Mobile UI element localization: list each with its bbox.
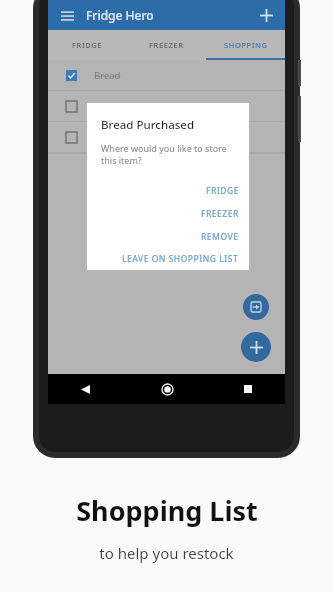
- button[interactable]: Recents: [237, 378, 259, 400]
- button[interactable]: Move to fridge: [243, 294, 269, 320]
- staticText: LEAVE ON SHOPPING LIST: [122, 253, 239, 265]
- staticText: FRIDGE: [206, 185, 239, 197]
- button[interactable]: REMOVE: [101, 225, 239, 248]
- button[interactable]: FREEZER: [127, 30, 206, 60]
- staticText: Shopping List: [76, 492, 258, 529]
- button[interactable]: Back: [74, 378, 96, 400]
- button[interactable]: SHOPPING: [206, 30, 285, 60]
- button[interactable]: [48, 122, 285, 152]
- button[interactable]: Bread: [48, 60, 285, 90]
- staticText: Bread Purchased: [101, 117, 195, 133]
- button[interactable]: Home: [156, 378, 178, 400]
- button[interactable]: FREEZER: [101, 202, 239, 225]
- staticText: to help you restock: [99, 543, 234, 563]
- button[interactable]: LEAVE ON SHOPPING LIST: [101, 248, 239, 270]
- staticText: Fridge Hero: [86, 7, 154, 23]
- staticText: Bread: [94, 69, 121, 82]
- staticText: REMOVE: [201, 231, 239, 243]
- button[interactable]: Add: [255, 4, 277, 26]
- button[interactable]: Menu: [56, 4, 78, 26]
- button[interactable]: FRIDGE: [48, 30, 127, 60]
- staticText: FRIDGE: [72, 40, 103, 50]
- button[interactable]: FRIDGE: [101, 179, 239, 202]
- staticText: Where would you like to store this item?: [101, 142, 227, 167]
- button[interactable]: [48, 91, 285, 121]
- staticText: FREEZER: [149, 40, 184, 50]
- staticText: SHOPPING: [224, 40, 268, 50]
- button[interactable]: Add item: [241, 332, 271, 362]
- staticText: FREEZER: [201, 208, 239, 220]
